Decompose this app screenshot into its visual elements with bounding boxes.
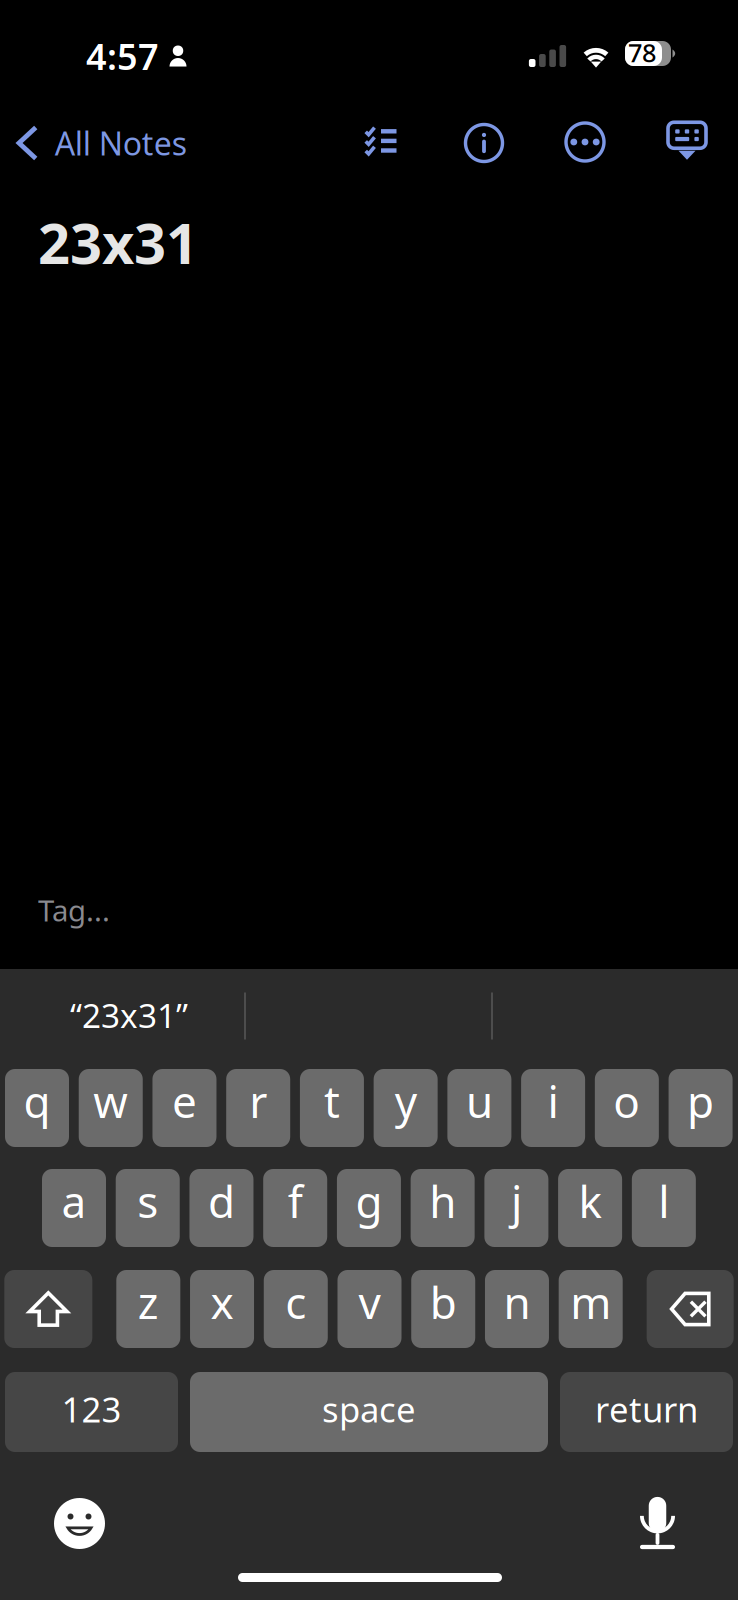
staticText: return bbox=[595, 1386, 698, 1432]
staticText: g bbox=[355, 1172, 382, 1230]
button[interactable]: Info bbox=[464, 123, 504, 163]
staticText: c bbox=[285, 1273, 306, 1331]
staticText: n bbox=[503, 1273, 530, 1331]
button[interactable]: d bbox=[189, 1169, 253, 1247]
button[interactable]: a bbox=[42, 1169, 106, 1247]
staticText: e bbox=[172, 1072, 197, 1130]
staticText: o bbox=[613, 1072, 640, 1130]
staticText: t bbox=[324, 1072, 340, 1130]
staticText: i bbox=[548, 1072, 559, 1130]
button[interactable]: Checklist bbox=[361, 120, 401, 160]
staticText: v bbox=[358, 1273, 380, 1331]
staticText: f bbox=[288, 1172, 303, 1230]
staticText: u bbox=[466, 1072, 493, 1130]
button[interactable]: Shift bbox=[4, 1270, 92, 1348]
button[interactable]: space bbox=[190, 1372, 548, 1452]
button[interactable]: x bbox=[190, 1270, 254, 1348]
staticText: All Notes bbox=[55, 122, 187, 164]
button[interactable]: Delete bbox=[647, 1270, 734, 1348]
button[interactable]: g bbox=[337, 1169, 401, 1247]
staticText: d bbox=[208, 1172, 235, 1230]
button[interactable]: q bbox=[5, 1069, 69, 1147]
staticText: w bbox=[93, 1072, 128, 1130]
button[interactable]: 123 bbox=[5, 1372, 178, 1452]
button[interactable]: Hide Keyboard bbox=[667, 121, 707, 161]
button[interactable]: s bbox=[116, 1169, 180, 1247]
button[interactable]: All Notes bbox=[19, 126, 187, 160]
button[interactable]: p bbox=[669, 1069, 733, 1147]
staticText: q bbox=[23, 1072, 50, 1130]
button[interactable]: t bbox=[300, 1069, 364, 1147]
staticText: y bbox=[395, 1072, 417, 1130]
staticText: s bbox=[137, 1172, 158, 1230]
staticText: r bbox=[249, 1072, 267, 1130]
button[interactable]: c bbox=[264, 1270, 328, 1348]
button[interactable]: Dictate bbox=[640, 1496, 675, 1550]
staticText: z bbox=[138, 1273, 159, 1331]
staticText: 23x31 bbox=[38, 205, 198, 279]
button[interactable]: b bbox=[411, 1270, 475, 1348]
button[interactable]: o bbox=[595, 1069, 659, 1147]
button[interactable]: u bbox=[447, 1069, 511, 1147]
button[interactable]: l bbox=[632, 1169, 696, 1247]
staticText: l bbox=[658, 1172, 669, 1230]
staticText: k bbox=[579, 1172, 602, 1230]
staticText: 4:57 bbox=[86, 32, 159, 80]
button[interactable]: j bbox=[484, 1169, 548, 1247]
staticText: “23x31” bbox=[70, 993, 188, 1037]
button[interactable]: y bbox=[374, 1069, 438, 1147]
button[interactable]: z bbox=[116, 1270, 180, 1348]
staticText: space bbox=[322, 1386, 416, 1432]
staticText: j bbox=[511, 1172, 522, 1230]
button[interactable]: n bbox=[485, 1270, 549, 1348]
staticText: Tag... bbox=[38, 890, 110, 929]
button[interactable]: Emoji bbox=[54, 1498, 105, 1549]
button[interactable]: More bbox=[565, 122, 605, 162]
staticText: p bbox=[687, 1072, 714, 1130]
button[interactable]: e bbox=[152, 1069, 216, 1147]
button[interactable]: return bbox=[560, 1372, 733, 1452]
staticText: 123 bbox=[61, 1386, 121, 1432]
button[interactable]: k bbox=[558, 1169, 622, 1247]
staticText: b bbox=[430, 1273, 457, 1331]
staticText: 78 bbox=[628, 36, 656, 69]
staticText: a bbox=[61, 1172, 86, 1230]
button[interactable]: “23x31” bbox=[0, 969, 244, 1063]
button[interactable]: v bbox=[337, 1270, 401, 1348]
button[interactable]: f bbox=[263, 1169, 327, 1247]
button[interactable]: Tag... bbox=[38, 895, 110, 925]
button[interactable]: i bbox=[521, 1069, 585, 1147]
button[interactable]: r bbox=[226, 1069, 290, 1147]
staticText: m bbox=[570, 1273, 611, 1331]
staticText: h bbox=[429, 1172, 456, 1230]
button[interactable]: m bbox=[559, 1270, 623, 1348]
staticText: x bbox=[210, 1273, 233, 1331]
button[interactable]: h bbox=[411, 1169, 475, 1247]
button[interactable]: w bbox=[79, 1069, 143, 1147]
